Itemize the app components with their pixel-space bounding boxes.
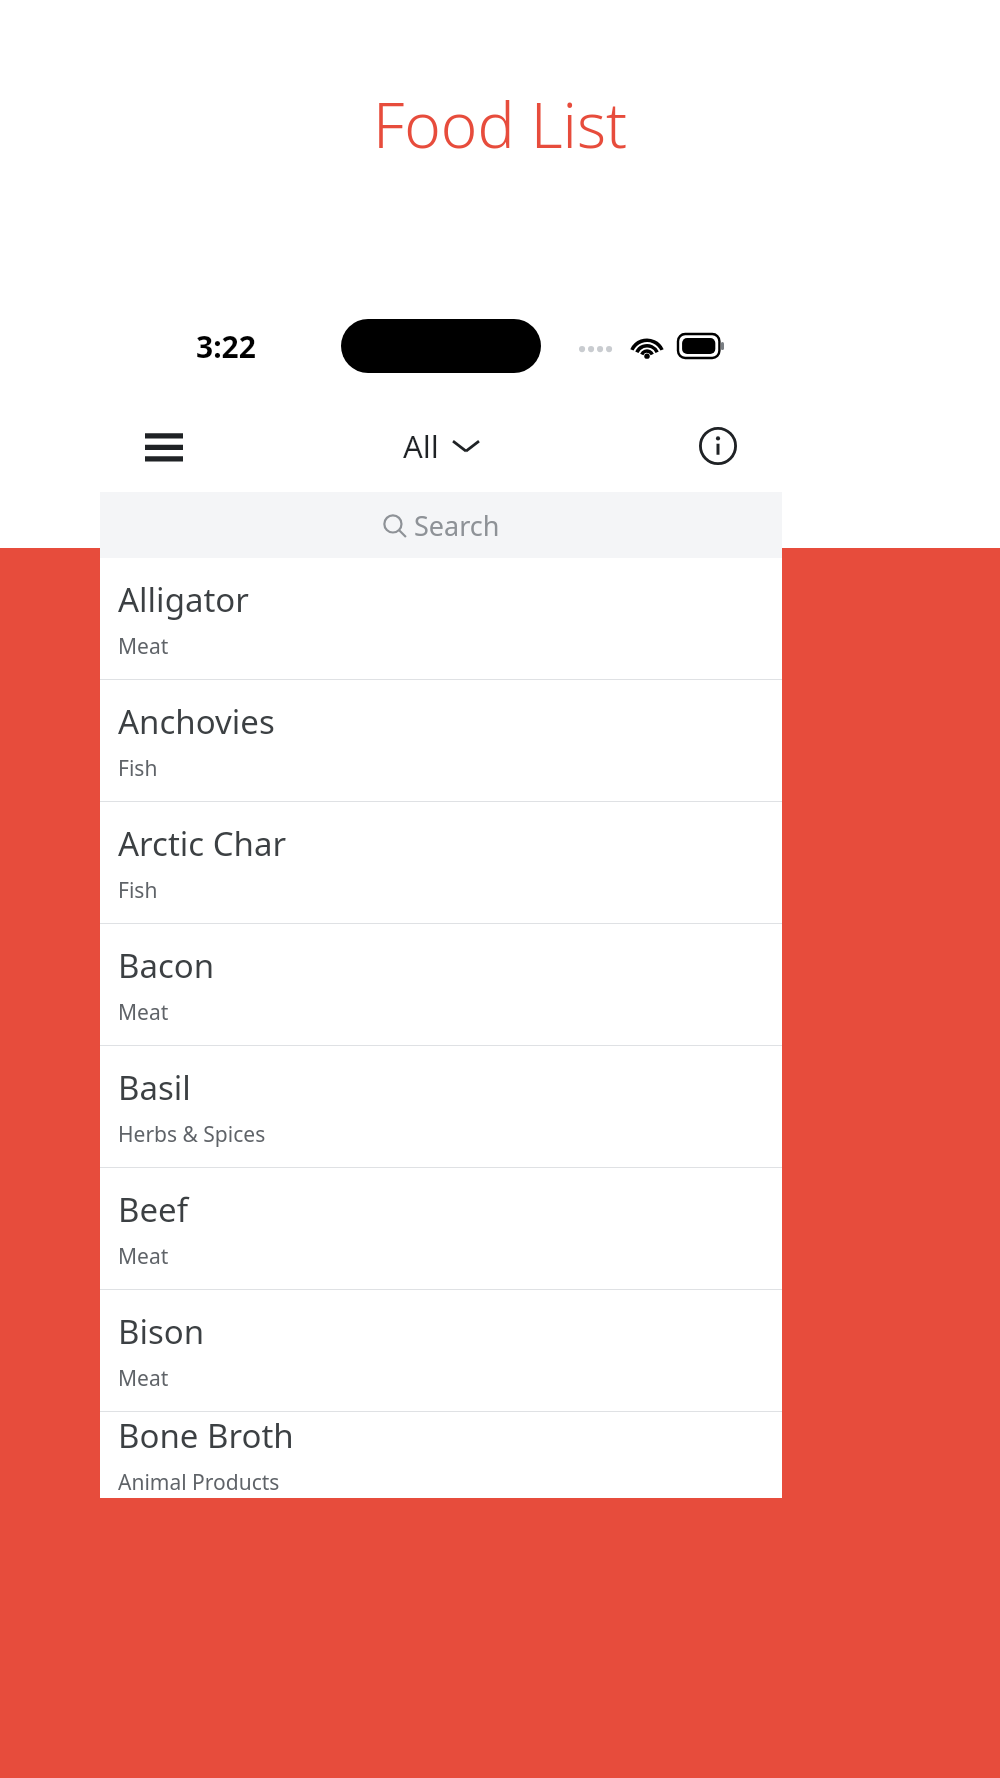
button[interactable]: Bacon (100, 924, 782, 1045)
staticText: Meat (118, 632, 169, 661)
staticText: Meat (118, 1364, 169, 1393)
button[interactable]: Alligator (100, 558, 782, 679)
button[interactable]: Search (100, 492, 782, 558)
staticText: Meat (118, 998, 169, 1027)
staticText: Beef (118, 1187, 189, 1232)
staticText: Meat (118, 1242, 169, 1271)
button[interactable]: Info (690, 418, 746, 474)
staticText: Alligator (118, 577, 249, 622)
button[interactable]: All (385, 417, 497, 475)
staticText: Basil (118, 1065, 191, 1110)
staticText: 3:22 (196, 326, 256, 367)
button[interactable]: Basil (100, 1046, 782, 1167)
staticText: Animal Products (118, 1468, 280, 1497)
staticText: Herbs & Spices (118, 1120, 266, 1149)
button[interactable]: Beef (100, 1168, 782, 1289)
staticText: All (403, 425, 439, 467)
staticText: Arctic Char (118, 821, 287, 866)
button[interactable]: Bison (100, 1290, 782, 1411)
button[interactable]: Anchovies (100, 680, 782, 801)
button[interactable]: Bone Broth (100, 1412, 782, 1498)
button[interactable]: Arctic Char (100, 802, 782, 923)
staticText: Bone Broth (118, 1413, 294, 1458)
staticText: Fish (118, 876, 158, 905)
staticText: Anchovies (118, 699, 275, 744)
staticText: Food List (0, 82, 1000, 166)
staticText: Search (414, 507, 500, 544)
staticText: Bison (118, 1309, 205, 1354)
button[interactable]: Menu (136, 418, 192, 474)
staticText: Fish (118, 754, 158, 783)
staticText: Bacon (118, 943, 215, 988)
